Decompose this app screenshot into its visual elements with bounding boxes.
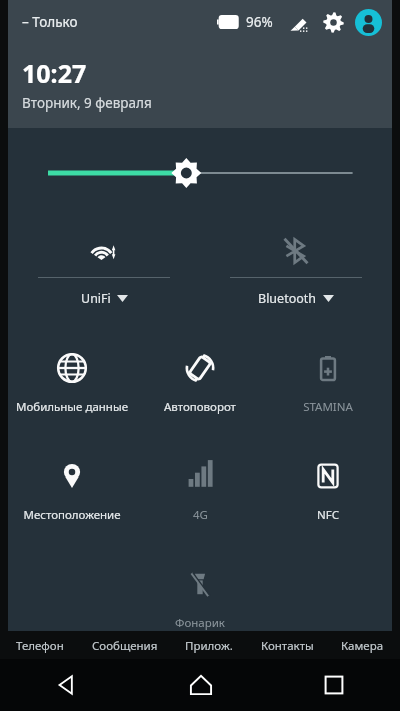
button[interactable]: Edit quick settings (285, 9, 311, 35)
staticText: Камера (341, 638, 384, 654)
staticText: 10:27 (22, 56, 87, 90)
button[interactable]: Контакты (261, 638, 314, 654)
staticText: 4G (193, 507, 208, 523)
button[interactable]: Settings (319, 8, 347, 36)
staticText: Прилож. (185, 638, 233, 654)
button[interactable]: Auto-rotate (136, 339, 264, 415)
other: Wi-Fi (88, 235, 120, 267)
staticText: Bluetooth (258, 290, 317, 307)
staticText: Вторник, 9 февраля (22, 94, 152, 112)
staticText: 96% (246, 13, 273, 31)
button[interactable]: Wi-Fi (8, 225, 200, 307)
button[interactable]: Bluetooth (200, 225, 392, 307)
button[interactable]: Home (134, 659, 267, 711)
button[interactable]: STAMINA mode (264, 339, 392, 415)
button[interactable]: NFC (264, 447, 392, 523)
button[interactable]: Сообщения (92, 638, 158, 654)
staticText: UniFi (81, 290, 111, 307)
staticText: Мобильные данные (16, 399, 128, 415)
staticText: Контакты (261, 638, 314, 654)
other: Auto-rotate (185, 353, 215, 383)
button[interactable]: Brightness (8, 156, 392, 190)
button[interactable]: User profile (355, 9, 382, 36)
staticText: STAMINA (303, 399, 353, 415)
staticText: Местоположение (23, 507, 121, 523)
staticText: Телефон (16, 638, 64, 654)
button[interactable]: Телефон (16, 638, 64, 654)
staticText: Фонарик (175, 615, 225, 631)
staticText: – Только экстренны (22, 13, 119, 31)
button[interactable]: Location (8, 447, 136, 523)
button[interactable]: Back (0, 659, 134, 711)
other: Mobile network 4G (185, 461, 215, 491)
button[interactable]: Mobile network 4G (136, 447, 264, 523)
button[interactable]: Mobile data (8, 339, 136, 415)
other: Mobile data (57, 353, 87, 383)
button[interactable]: Flashlight (136, 555, 264, 631)
other: Bluetooth (280, 235, 312, 267)
other: NFC (313, 461, 343, 491)
other: Location (57, 461, 87, 491)
other: STAMINA mode (313, 353, 343, 383)
other: Flashlight (185, 569, 215, 599)
staticText: NFC (317, 507, 339, 523)
button[interactable]: Recent apps (267, 659, 400, 711)
button[interactable]: Камера (341, 638, 384, 654)
staticText: Сообщения (92, 638, 158, 654)
staticText: Автоповорот (164, 399, 236, 415)
button[interactable]: Прилож. (185, 638, 233, 654)
